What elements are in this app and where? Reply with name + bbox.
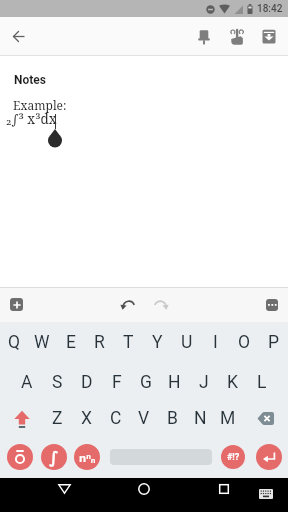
button[interactable] bbox=[266, 299, 278, 311]
staticText: Z bbox=[52, 408, 63, 429]
staticText: E bbox=[66, 332, 76, 353]
staticText: #!? bbox=[227, 452, 240, 463]
staticText: M bbox=[220, 408, 236, 429]
button[interactable]: S bbox=[42, 370, 72, 394]
staticText: F bbox=[112, 372, 122, 393]
button[interactable]: A bbox=[12, 370, 42, 394]
button[interactable]: D bbox=[72, 370, 102, 394]
staticText: A bbox=[21, 372, 33, 393]
button[interactable] bbox=[7, 444, 33, 470]
staticText: V bbox=[138, 408, 150, 429]
staticText: Example: bbox=[13, 97, 67, 113]
button[interactable]: X bbox=[72, 406, 101, 430]
staticText: ∫ bbox=[49, 448, 59, 467]
button[interactable] bbox=[256, 444, 282, 470]
staticText: 18:42 bbox=[257, 3, 283, 15]
staticText: X bbox=[81, 408, 92, 429]
button[interactable] bbox=[256, 486, 276, 502]
button[interactable] bbox=[0, 406, 43, 430]
staticText: N bbox=[194, 408, 207, 429]
button[interactable]: F bbox=[102, 370, 131, 394]
staticText: L bbox=[257, 372, 267, 393]
staticText: T bbox=[123, 332, 134, 353]
button[interactable] bbox=[149, 293, 172, 316]
button[interactable]: L bbox=[247, 370, 276, 394]
button[interactable]: B bbox=[158, 406, 186, 430]
button[interactable] bbox=[117, 293, 140, 316]
button[interactable]: N bbox=[186, 406, 214, 430]
button[interactable]: W bbox=[28, 330, 56, 354]
staticText: J bbox=[199, 372, 209, 393]
staticText: nⁿₙ bbox=[79, 450, 96, 465]
staticText: G bbox=[140, 372, 152, 393]
staticText: R bbox=[94, 332, 105, 353]
button[interactable]: Z bbox=[43, 406, 72, 430]
button[interactable]: O bbox=[230, 330, 259, 354]
button[interactable]: ∫ bbox=[41, 444, 67, 470]
staticText: ₂∫³ x³dx bbox=[6, 110, 57, 128]
button[interactable]: H bbox=[160, 370, 189, 394]
button[interactable] bbox=[192, 24, 216, 48]
staticText: Q bbox=[8, 332, 21, 353]
button[interactable]: R bbox=[85, 330, 114, 354]
staticText: K bbox=[227, 372, 238, 393]
button[interactable] bbox=[7, 25, 31, 49]
staticText: U bbox=[181, 332, 193, 353]
staticText: Notes bbox=[14, 73, 46, 87]
button[interactable] bbox=[52, 478, 76, 500]
button[interactable]: G bbox=[131, 370, 160, 394]
button[interactable] bbox=[257, 24, 281, 48]
button[interactable]: K bbox=[218, 370, 247, 394]
staticText: O bbox=[238, 332, 251, 353]
button[interactable]: Q bbox=[0, 330, 28, 354]
button[interactable]: T bbox=[114, 330, 143, 354]
button[interactable] bbox=[225, 24, 249, 48]
staticText: Y bbox=[152, 332, 163, 353]
staticText: P bbox=[268, 332, 280, 353]
button[interactable]: M bbox=[214, 406, 242, 430]
button[interactable] bbox=[212, 478, 236, 500]
staticText: D bbox=[81, 372, 93, 393]
button[interactable] bbox=[132, 478, 156, 500]
button[interactable] bbox=[242, 406, 288, 430]
staticText: I bbox=[213, 332, 218, 353]
button[interactable]: J bbox=[189, 370, 218, 394]
button[interactable]: E bbox=[56, 330, 85, 354]
staticText: W bbox=[34, 332, 50, 353]
button[interactable]: I bbox=[201, 330, 230, 354]
staticText: C bbox=[110, 408, 122, 429]
button[interactable]: #!? bbox=[221, 445, 245, 469]
button[interactable]: Y bbox=[143, 330, 172, 354]
staticText: B bbox=[167, 408, 178, 429]
button[interactable] bbox=[10, 298, 23, 311]
button[interactable]: P bbox=[259, 330, 288, 354]
button[interactable]: U bbox=[172, 330, 201, 354]
staticText: H bbox=[168, 372, 181, 393]
staticText: S bbox=[52, 372, 63, 393]
button[interactable]: C bbox=[101, 406, 130, 430]
button[interactable]: nⁿₙ bbox=[74, 444, 100, 470]
button[interactable]: V bbox=[130, 406, 158, 430]
